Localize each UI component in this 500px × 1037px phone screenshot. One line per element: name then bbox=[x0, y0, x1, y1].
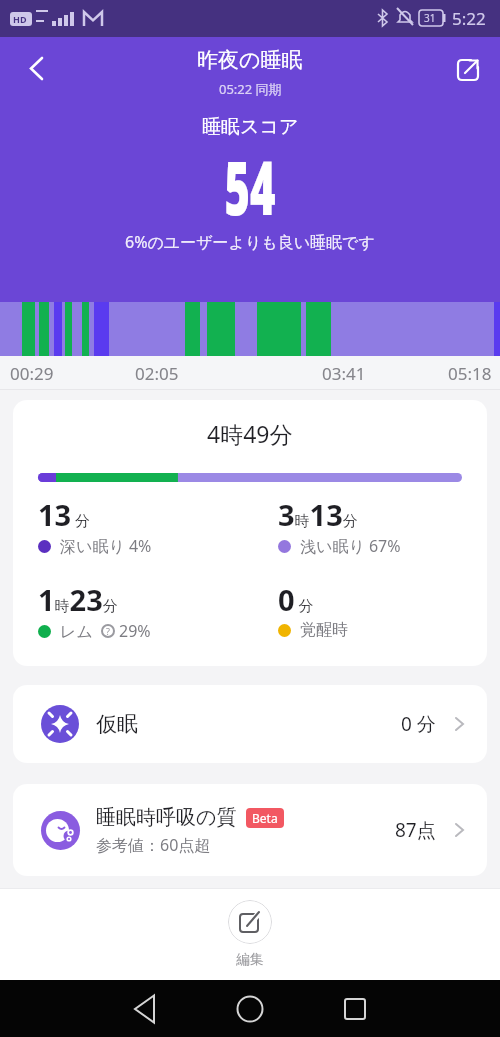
staticText: 6%のユーザーよりも良い睡眠です bbox=[125, 231, 375, 253]
staticText: ? bbox=[106, 625, 110, 637]
staticText: 13 分 bbox=[38, 495, 91, 534]
staticText: 4時49分 bbox=[207, 418, 293, 449]
staticText: 0 分 bbox=[278, 580, 314, 619]
staticText: 覚醒時 bbox=[300, 620, 348, 640]
staticText: 05:22 同期 bbox=[219, 80, 282, 98]
staticText: 00:29 bbox=[10, 362, 54, 385]
staticText: 03:41 bbox=[322, 362, 366, 385]
staticText: 3時13分 bbox=[278, 495, 358, 534]
staticText: HD bbox=[13, 13, 27, 25]
button[interactable]: 睡眠時呼吸の質 bbox=[13, 784, 487, 876]
staticText: 0 分 bbox=[401, 711, 436, 737]
button[interactable] bbox=[331, 985, 379, 1033]
staticText: 昨夜の睡眠 bbox=[197, 47, 303, 73]
staticText: 87点 bbox=[395, 817, 436, 843]
staticText: 睡眠スコア bbox=[202, 115, 299, 139]
staticText: 1時23分 bbox=[38, 580, 118, 619]
staticText: 54 bbox=[224, 135, 275, 237]
staticText: 仮眠 bbox=[96, 711, 138, 737]
button[interactable] bbox=[228, 900, 272, 944]
button[interactable] bbox=[226, 985, 274, 1033]
button[interactable] bbox=[121, 985, 169, 1033]
button[interactable]: 仮眠 bbox=[13, 685, 487, 763]
staticText: 編集 bbox=[236, 951, 264, 969]
staticText: 深い眠り 4% bbox=[60, 535, 152, 557]
button[interactable] bbox=[14, 47, 62, 95]
staticText: 31 bbox=[424, 11, 436, 25]
staticText: 5:22 bbox=[452, 7, 486, 30]
staticText: 睡眠時呼吸の質 bbox=[96, 805, 237, 830]
staticText: 浅い眠り 67% bbox=[300, 535, 401, 557]
staticText: 02:05 bbox=[135, 362, 179, 385]
staticText: レム bbox=[60, 620, 97, 642]
staticText: 参考値：60点超 bbox=[96, 834, 211, 856]
staticText: 29% bbox=[119, 620, 151, 642]
staticText: Beta bbox=[252, 810, 278, 826]
staticText: 05:18 bbox=[448, 362, 492, 385]
button[interactable] bbox=[455, 57, 485, 87]
